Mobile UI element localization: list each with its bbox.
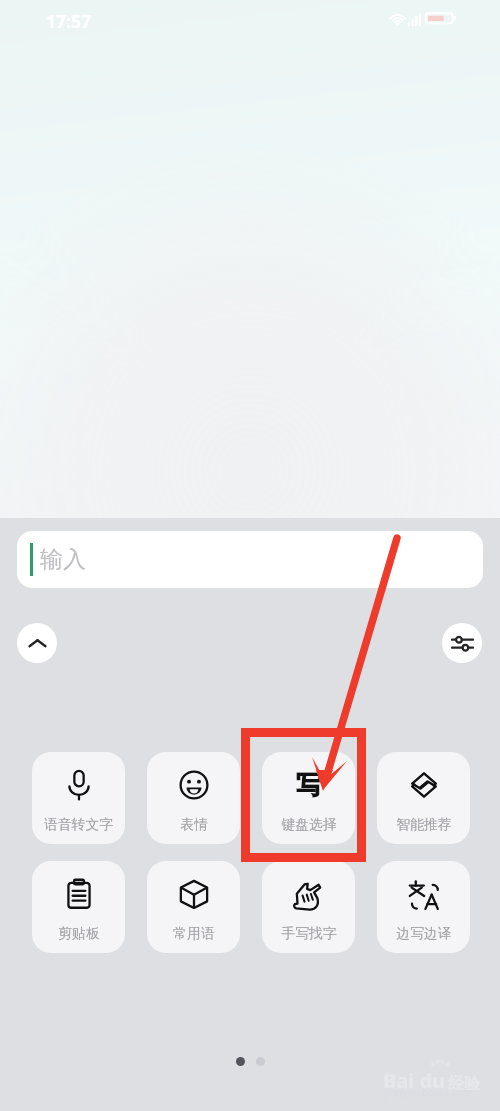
staticText: 智能推荐 [396,816,452,833]
staticText: Bai du [383,1067,446,1094]
button[interactable]: 常用语 [147,861,240,953]
staticText: 手写找字 [281,925,337,942]
staticText: jingyan.baidu.com [385,1085,472,1099]
button[interactable]: 语音转文字 [32,752,125,844]
staticText: 边写边译 [396,925,452,942]
button[interactable]: 智能推荐 [377,752,470,844]
staticText: 键盘选择 [281,816,337,833]
staticText: 语音转文字 [44,816,113,833]
button[interactable]: Keyboard settings [442,623,482,663]
button[interactable]: Collapse keyboard [17,623,57,663]
staticText: 表情 [180,816,208,833]
button[interactable]: 剪贴板 [32,861,125,953]
staticText: 剪贴板 [58,925,100,942]
staticText: 常用语 [173,925,215,942]
button[interactable]: 输入 [17,531,483,588]
staticText: 17:57 [46,9,91,33]
button[interactable]: 手写找字 [262,861,355,953]
staticText: 输入 [40,545,86,574]
button[interactable]: 写 [262,752,355,844]
staticText: 经验 [448,1074,480,1094]
button[interactable]: 表情 [147,752,240,844]
button[interactable]: 边写边译 [377,861,470,953]
staticText: 写 [296,769,322,802]
